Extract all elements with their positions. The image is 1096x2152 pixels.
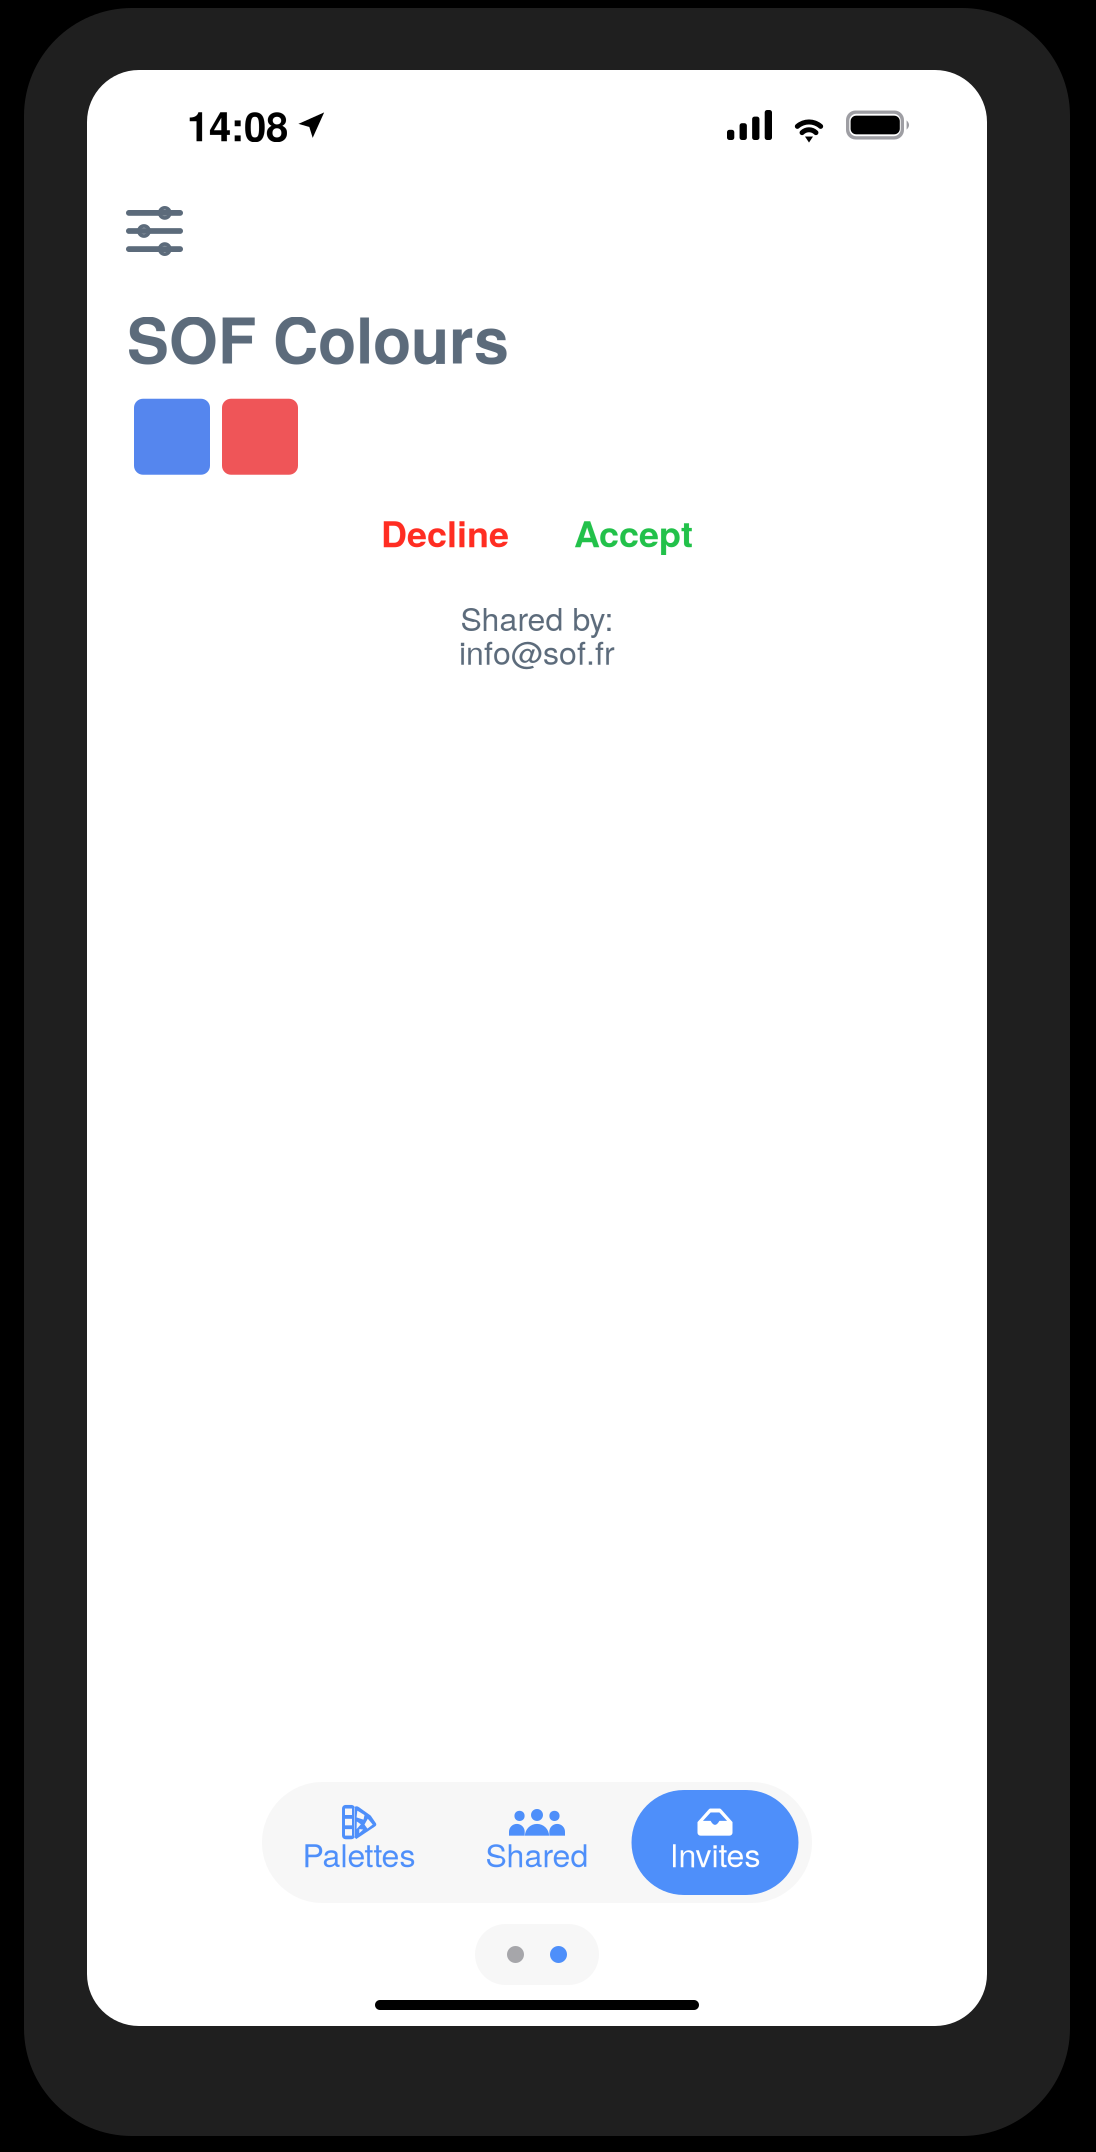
staticText: Shared [485, 1831, 588, 1876]
button[interactable]: Palettes [275, 1790, 442, 1895]
button[interactable]: Accept [574, 507, 693, 558]
staticText: Accept [574, 507, 693, 558]
button[interactable]: Adjustments [114, 196, 195, 266]
button[interactable]: Decline [381, 507, 509, 558]
staticText: Invites [669, 1831, 760, 1876]
staticText: 14:08 [187, 96, 288, 154]
staticText: Decline [381, 507, 509, 558]
button[interactable]: Invites [631, 1790, 798, 1895]
staticText: Shared by: [460, 594, 613, 640]
staticText: SOF Colours [127, 293, 509, 383]
button[interactable]: Shared [453, 1790, 620, 1895]
staticText: Palettes [302, 1831, 415, 1876]
staticText: info@sof.fr [459, 628, 615, 674]
